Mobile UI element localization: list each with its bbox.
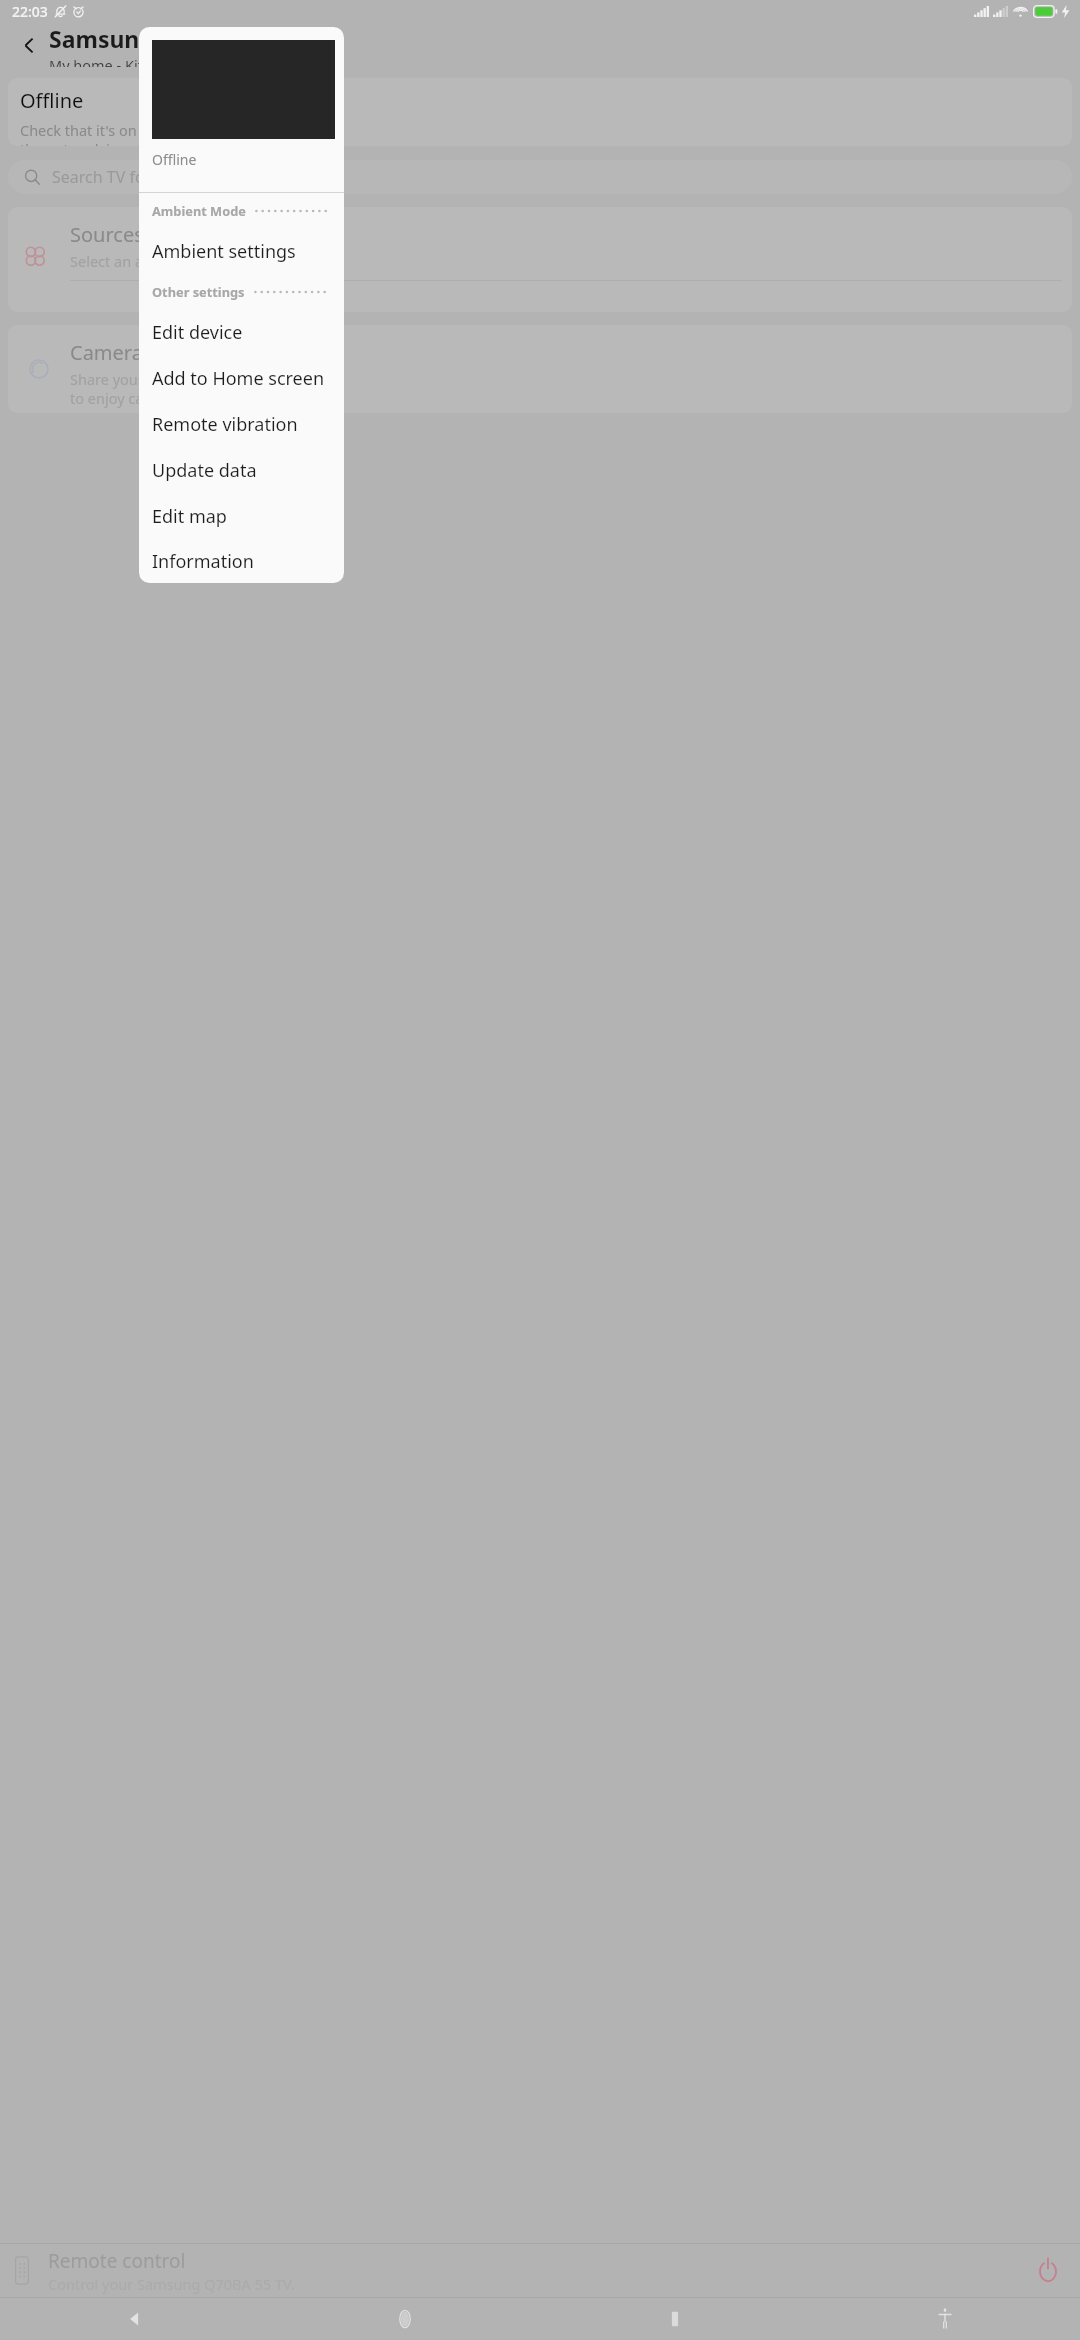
staticText: Edit map [152, 504, 227, 529]
button[interactable]: Camera Sharing [8, 325, 1072, 413]
staticText: Update data [152, 458, 257, 483]
button[interactable]: Power [1030, 2253, 1066, 2289]
button[interactable]: Edit map [139, 493, 344, 539]
staticText: Ambient settings [152, 239, 296, 264]
button[interactable]: Home [270, 2298, 540, 2340]
staticText: Offline [20, 87, 84, 114]
staticText: Camera Sharing [70, 339, 221, 366]
staticText: Remote control [48, 2248, 186, 2274]
staticText: Check that it's on and that the network … [20, 120, 198, 146]
staticText: Samsung Q70BA 55 TV [49, 23, 303, 54]
button[interactable]: Offline [8, 78, 1072, 146]
button[interactable]: Recents [540, 2298, 810, 2340]
staticText: My home - Kitchen [49, 55, 177, 67]
button[interactable]: Update data [139, 447, 344, 493]
staticText: Search TV for content [52, 166, 214, 188]
staticText: Remote vibration effect [152, 412, 331, 437]
button[interactable]: Ambient settings [139, 228, 344, 274]
staticText: Sources & apps [70, 221, 215, 248]
button[interactable]: Information [139, 539, 344, 583]
staticText: 22:03 [12, 2, 48, 21]
button[interactable]: Edit device [139, 309, 344, 355]
staticText: Other settings [152, 283, 245, 300]
button[interactable]: Sources & apps [8, 207, 1072, 312]
button[interactable]: Remote vibration effect [139, 401, 344, 447]
button[interactable]: Back [9, 25, 49, 65]
button[interactable]: Back [0, 2298, 270, 2340]
staticText: Edit device [152, 320, 243, 345]
staticText: Information [152, 549, 254, 574]
staticText: Offline [152, 150, 197, 169]
button[interactable]: Remote control [0, 2244, 1080, 2297]
staticText: Ambient Mode [152, 202, 246, 219]
button[interactable]: Search TV for content [8, 160, 1072, 194]
button[interactable]: Add to Home screen [139, 355, 344, 401]
staticText: Share your mobile camera to enjoy camera… [70, 369, 249, 408]
staticText: Add to Home screen [152, 366, 325, 391]
staticText: Select an app or source [70, 251, 229, 271]
